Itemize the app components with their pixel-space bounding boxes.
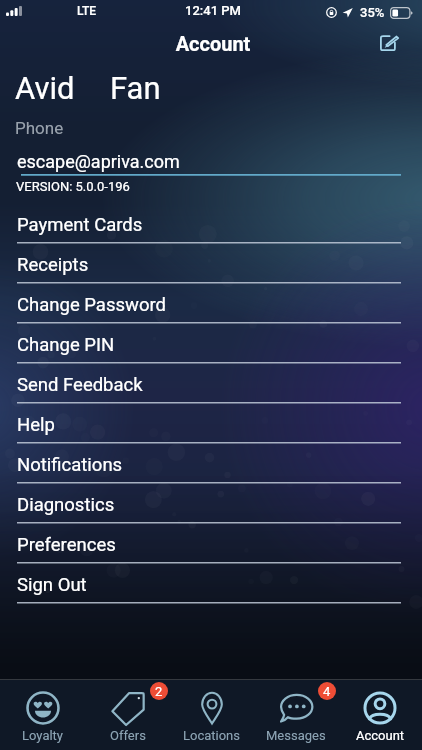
- button[interactable]: Change PIN: [0, 323, 422, 363]
- staticText: Send Feedback: [17, 374, 143, 396]
- staticText: Avid: [15, 70, 75, 106]
- button[interactable]: 4: [254, 680, 338, 750]
- button[interactable]: Receipts: [0, 243, 422, 283]
- button[interactable]: Send Feedback: [0, 363, 422, 403]
- staticText: VERSION: 5.0.0-196: [16, 179, 130, 194]
- staticText: Locations: [183, 728, 241, 743]
- button[interactable]: Diagnostics: [0, 483, 422, 523]
- staticText: Help: [17, 414, 55, 436]
- staticText: 4: [323, 684, 331, 699]
- staticText: Loyalty: [22, 728, 64, 743]
- staticText: Change PIN: [17, 334, 115, 356]
- button[interactable]: Sign Out: [0, 563, 422, 603]
- staticText: Messages: [266, 728, 326, 743]
- staticText: Sign Out: [17, 574, 87, 596]
- button[interactable]: Notifications: [0, 443, 422, 483]
- button[interactable]: Account: [338, 680, 422, 750]
- staticText: Payment Cards: [17, 214, 143, 236]
- staticText: Notifications: [17, 454, 123, 476]
- button[interactable]: Locations: [170, 680, 254, 750]
- staticText: Offers: [110, 728, 146, 743]
- staticText: Account: [356, 728, 405, 743]
- button[interactable]: Preferences: [0, 523, 422, 563]
- button[interactable]: Edit profile: [371, 25, 409, 61]
- staticText: 12:41 PM: [2, 3, 422, 18]
- staticText: escape@apriva.com: [17, 151, 180, 172]
- staticText: Diagnostics: [17, 494, 115, 516]
- staticText: Change Password: [17, 294, 167, 316]
- staticText: LTE: [77, 4, 97, 18]
- button[interactable]: 2: [85, 680, 170, 750]
- staticText: Receipts: [17, 254, 89, 276]
- button[interactable]: Loyalty: [0, 680, 85, 750]
- staticText: 2: [155, 684, 163, 699]
- button[interactable]: Payment Cards: [0, 203, 422, 243]
- staticText: Preferences: [17, 534, 116, 556]
- staticText: Fan: [110, 70, 161, 106]
- staticText: Account: [2, 32, 422, 55]
- button[interactable]: Help: [0, 403, 422, 443]
- staticText: Phone: [15, 118, 64, 138]
- staticText: 35%: [360, 5, 385, 20]
- button[interactable]: Change Password: [0, 283, 422, 323]
